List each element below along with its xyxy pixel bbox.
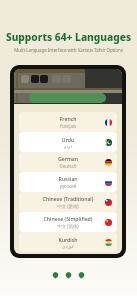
staticText: French bbox=[19, 115, 117, 122]
staticText: русский bbox=[19, 183, 117, 189]
staticText: German bbox=[19, 155, 117, 162]
button[interactable]: Kurdish bbox=[19, 232, 117, 252]
staticText: 中文 (简体) bbox=[19, 223, 117, 229]
button[interactable]: Urdu bbox=[19, 132, 117, 152]
button[interactable]: French bbox=[19, 112, 117, 132]
staticText: Urdu bbox=[19, 136, 117, 143]
staticText: Russian bbox=[19, 175, 117, 182]
staticText: Kurdish bbox=[19, 236, 117, 243]
button[interactable]: German bbox=[19, 152, 117, 172]
button[interactable]: Russian bbox=[19, 172, 117, 192]
button[interactable]: Chinese (Traditional) bbox=[19, 192, 117, 212]
button[interactable]: Chinese (Simplified) bbox=[19, 212, 117, 232]
staticText: Chinese (Simplified) bbox=[19, 215, 117, 222]
staticText: 中文 (繁體) bbox=[19, 203, 117, 209]
staticText: français bbox=[19, 123, 117, 129]
staticText: Supports 64+ Languages bbox=[0, 30, 137, 44]
staticText: Chinese (Traditional) bbox=[19, 195, 117, 202]
staticText: Multi-Language Interface with Various Ta… bbox=[0, 47, 137, 53]
staticText: Deutsch bbox=[19, 163, 117, 169]
staticText: کوردی bbox=[19, 244, 117, 249]
staticText: اردو bbox=[19, 144, 117, 149]
